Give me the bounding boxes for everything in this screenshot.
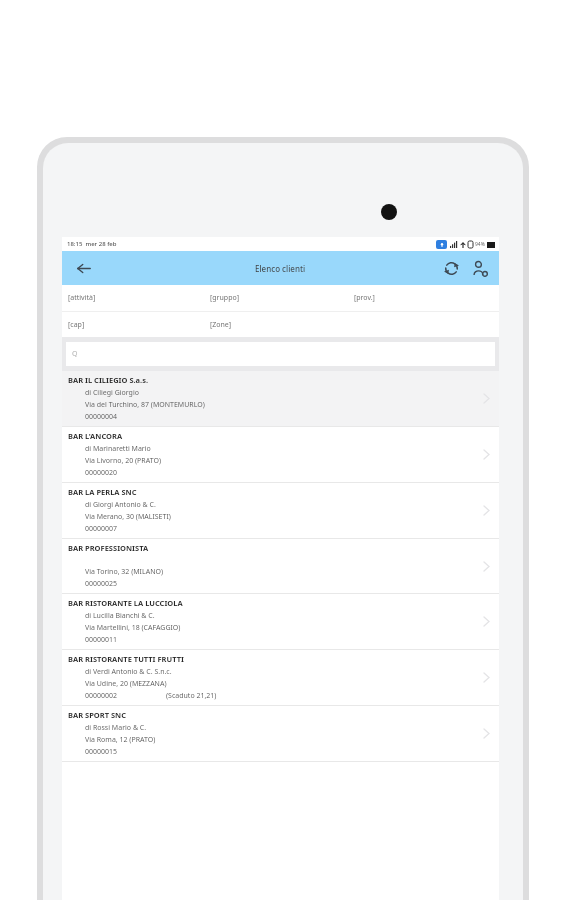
staticText: BAR IL CILIEGIO S.a.s. (68, 375, 149, 385)
staticText: Via del Turchino, 87 (MONTEMURLO) (85, 400, 205, 410)
staticText: BAR L'ANCORA (68, 431, 123, 441)
staticText: 00000007 (85, 524, 118, 534)
staticText: Via Udine, 20 (MEZZANA) (85, 679, 167, 689)
staticText: 00000015 (85, 747, 118, 757)
button[interactable]: BAR L'ANCORA (62, 427, 499, 483)
staticText: Via Martellini, 18 (CAFAGGIO) (85, 623, 181, 633)
staticText: (Scaduto 21,21) (166, 691, 217, 701)
staticText: Via Merano, 30 (MALISETI) (85, 512, 171, 522)
staticText: di Verdi Antonio & C. S.n.c. (85, 667, 172, 677)
button[interactable]: BAR LA PERLA SNC (62, 483, 499, 539)
staticText: 00000002 (85, 691, 118, 701)
staticText: 18:15 mer 28 feb (67, 240, 117, 248)
staticText: BAR LA PERLA SNC (68, 487, 137, 497)
staticText: Q (72, 349, 78, 359)
staticText: 00000011 (85, 635, 118, 645)
staticText: di Marinaretti Mario (85, 444, 151, 454)
staticText: [attività] (68, 293, 96, 303)
button[interactable]: BAR IL CILIEGIO S.a.s. (62, 371, 499, 427)
staticText: 94% (475, 241, 485, 248)
button[interactable]: BAR SPORT SNC (62, 706, 499, 762)
staticText: di Lucilla Bianchi & C. (85, 611, 155, 621)
staticText: [Zone] (210, 320, 232, 330)
staticText: Via Torino, 32 (MILANO) (85, 567, 164, 577)
staticText: BAR RISTORANTE LA LUCCIOLA (68, 598, 183, 608)
button[interactable]: BAR PROFESSIONISTA (62, 539, 499, 594)
button[interactable]: Refresh (437, 254, 465, 282)
staticText: Via Roma, 12 (PRATO) (85, 735, 156, 745)
staticText: Elenco clienti (255, 263, 306, 274)
staticText: di Giorgi Antonio & C. (85, 500, 156, 510)
button[interactable]: BAR RISTORANTE LA LUCCIOLA (62, 594, 499, 650)
staticText: 00000004 (85, 412, 118, 422)
staticText: [cap] (68, 320, 85, 330)
staticText: [gruppo] (210, 293, 239, 303)
staticText: Via Livorno, 20 (PRATO) (85, 456, 161, 466)
staticText: BAR SPORT SNC (68, 710, 127, 720)
staticText: 00000020 (85, 468, 118, 478)
staticText: di Rossi Mario & C. (85, 723, 147, 733)
button[interactable]: Add client (465, 254, 493, 282)
staticText: BAR RISTORANTE TUTTI FRUTTI (68, 654, 184, 664)
staticText: [prov.] (354, 293, 375, 303)
button[interactable]: Back (70, 255, 96, 281)
staticText: di Ciliegi Giorgio (85, 388, 139, 398)
staticText: BAR PROFESSIONISTA (68, 543, 149, 553)
button[interactable]: BAR RISTORANTE TUTTI FRUTTI (62, 650, 499, 706)
staticText: 00000025 (85, 579, 118, 589)
